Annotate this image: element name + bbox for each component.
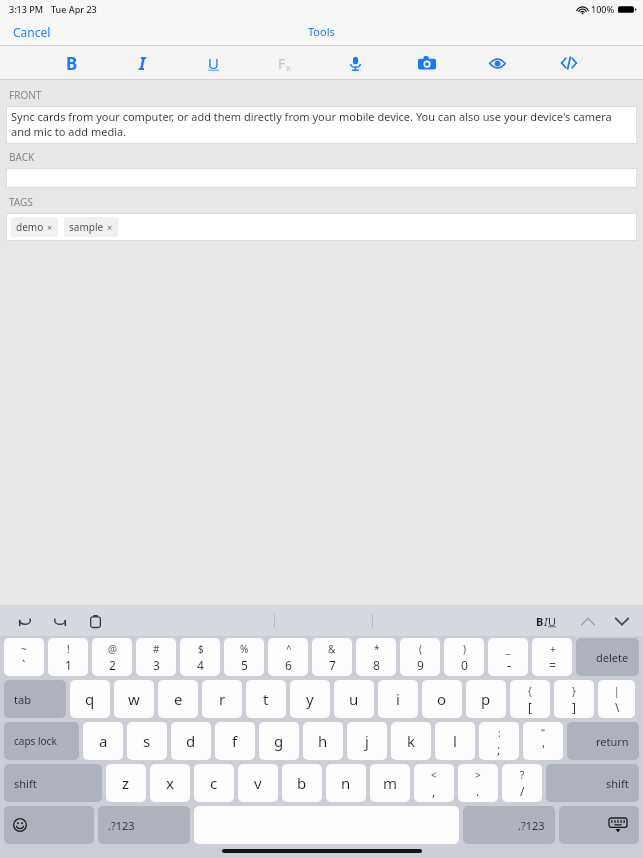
- button[interactable]: j: [347, 722, 387, 760]
- button[interactable]: Bold: [36, 46, 107, 80]
- button[interactable]: !: [48, 638, 88, 676]
- button[interactable]: q: [70, 680, 110, 718]
- button[interactable]: delete: [576, 638, 639, 676]
- button[interactable]: (: [400, 638, 440, 676]
- button[interactable]: Italic: [107, 46, 178, 80]
- button[interactable]: HTML source: [533, 46, 604, 80]
- button[interactable]: p: [466, 680, 506, 718]
- button[interactable]: |: [598, 680, 635, 718]
- staticText: i: [396, 689, 400, 709]
- staticText: x: [166, 773, 174, 793]
- button[interactable]: Undo: [10, 606, 40, 636]
- staticText: q: [85, 689, 95, 709]
- button[interactable]: ^: [268, 638, 308, 676]
- staticText: f: [232, 731, 238, 751]
- button[interactable]: m: [370, 764, 410, 802]
- button[interactable]: sample: [64, 217, 118, 237]
- button[interactable]: .?123: [463, 806, 555, 844]
- button[interactable]: Next field: [609, 608, 635, 634]
- button[interactable]: ): [444, 638, 484, 676]
- button[interactable]: {: [510, 680, 550, 718]
- staticText: .: [476, 783, 480, 799]
- button[interactable]: f: [215, 722, 255, 760]
- button[interactable]: Cancel: [0, 19, 64, 45]
- button[interactable]: t: [246, 680, 286, 718]
- button[interactable]: .?123: [98, 806, 190, 844]
- button[interactable]: Sync cards from your computer, or add th…: [6, 106, 637, 144]
- button[interactable]: u: [334, 680, 374, 718]
- staticText: 0: [461, 657, 468, 673]
- button[interactable]: a: [83, 722, 123, 760]
- staticText: 3:13 PM: [9, 3, 43, 15]
- button[interactable]: o: [422, 680, 462, 718]
- staticText: w: [128, 689, 140, 709]
- button[interactable]: k: [391, 722, 431, 760]
- staticText: <: [431, 768, 437, 782]
- staticText: ×: [107, 221, 113, 233]
- button[interactable]: return: [567, 722, 639, 760]
- button[interactable]: y: [290, 680, 330, 718]
- button[interactable]: shift: [4, 764, 102, 802]
- button[interactable]: ~: [4, 638, 44, 676]
- button[interactable]: i: [378, 680, 418, 718]
- staticText: delete: [596, 650, 629, 665]
- button[interactable]: &: [312, 638, 352, 676]
- button[interactable]: @: [92, 638, 132, 676]
- button[interactable]: g: [259, 722, 299, 760]
- button[interactable]: b: [282, 764, 322, 802]
- staticText: n: [341, 773, 351, 793]
- button[interactable]: ": [523, 722, 563, 760]
- button[interactable]: ?: [502, 764, 542, 802]
- button[interactable]: >: [458, 764, 498, 802]
- button[interactable]: r: [202, 680, 242, 718]
- button[interactable]: %: [224, 638, 264, 676]
- staticText: @: [108, 642, 117, 656]
- button[interactable]: n: [326, 764, 366, 802]
- button[interactable]: Previous field: [575, 608, 601, 634]
- button[interactable]: v: [238, 764, 278, 802]
- button[interactable]: w: [114, 680, 154, 718]
- staticText: #: [153, 642, 160, 656]
- button[interactable]: e: [158, 680, 198, 718]
- button[interactable]: Paste: [80, 606, 110, 636]
- staticText: Tue Apr 23: [51, 3, 97, 15]
- button[interactable]: Preview: [462, 46, 533, 80]
- button[interactable]: demo: [11, 217, 58, 237]
- staticText: 5: [241, 657, 248, 673]
- button[interactable]: Hide keyboard: [559, 806, 639, 844]
- button[interactable]: *: [356, 638, 396, 676]
- button[interactable]: }: [554, 680, 594, 718]
- button[interactable]: Underline: [178, 46, 249, 80]
- button[interactable]: x: [150, 764, 190, 802]
- button[interactable]: <: [414, 764, 454, 802]
- staticText: ~: [21, 642, 27, 656]
- button[interactable]: B: [532, 610, 561, 633]
- staticText: 2: [109, 657, 116, 673]
- button[interactable]: Emoji: [4, 806, 94, 844]
- button[interactable]: s: [127, 722, 167, 760]
- button[interactable]: Camera: [391, 46, 462, 80]
- button[interactable]: h: [303, 722, 343, 760]
- button[interactable]: +: [532, 638, 572, 676]
- button[interactable]: _: [488, 638, 528, 676]
- button[interactable]: Tools: [298, 19, 345, 44]
- button[interactable]: c: [194, 764, 234, 802]
- staticText: 3: [153, 657, 160, 673]
- button[interactable]: tab: [4, 680, 66, 718]
- button[interactable]: caps lock: [4, 722, 79, 760]
- button[interactable]: $: [180, 638, 220, 676]
- button[interactable]: z: [106, 764, 146, 802]
- staticText: ": [541, 726, 546, 740]
- button[interactable]: Record audio: [320, 46, 391, 80]
- button[interactable]: Clear formatting: [249, 46, 320, 80]
- staticText: shift: [606, 776, 629, 791]
- button[interactable]: l: [435, 722, 475, 760]
- button[interactable]: shift: [546, 764, 639, 802]
- button[interactable]: #: [136, 638, 176, 676]
- button[interactable]: [6, 168, 637, 188]
- button[interactable]: :: [479, 722, 519, 760]
- button[interactable]: d: [171, 722, 211, 760]
- staticText: %: [240, 642, 249, 656]
- button[interactable]: Redo: [45, 606, 75, 636]
